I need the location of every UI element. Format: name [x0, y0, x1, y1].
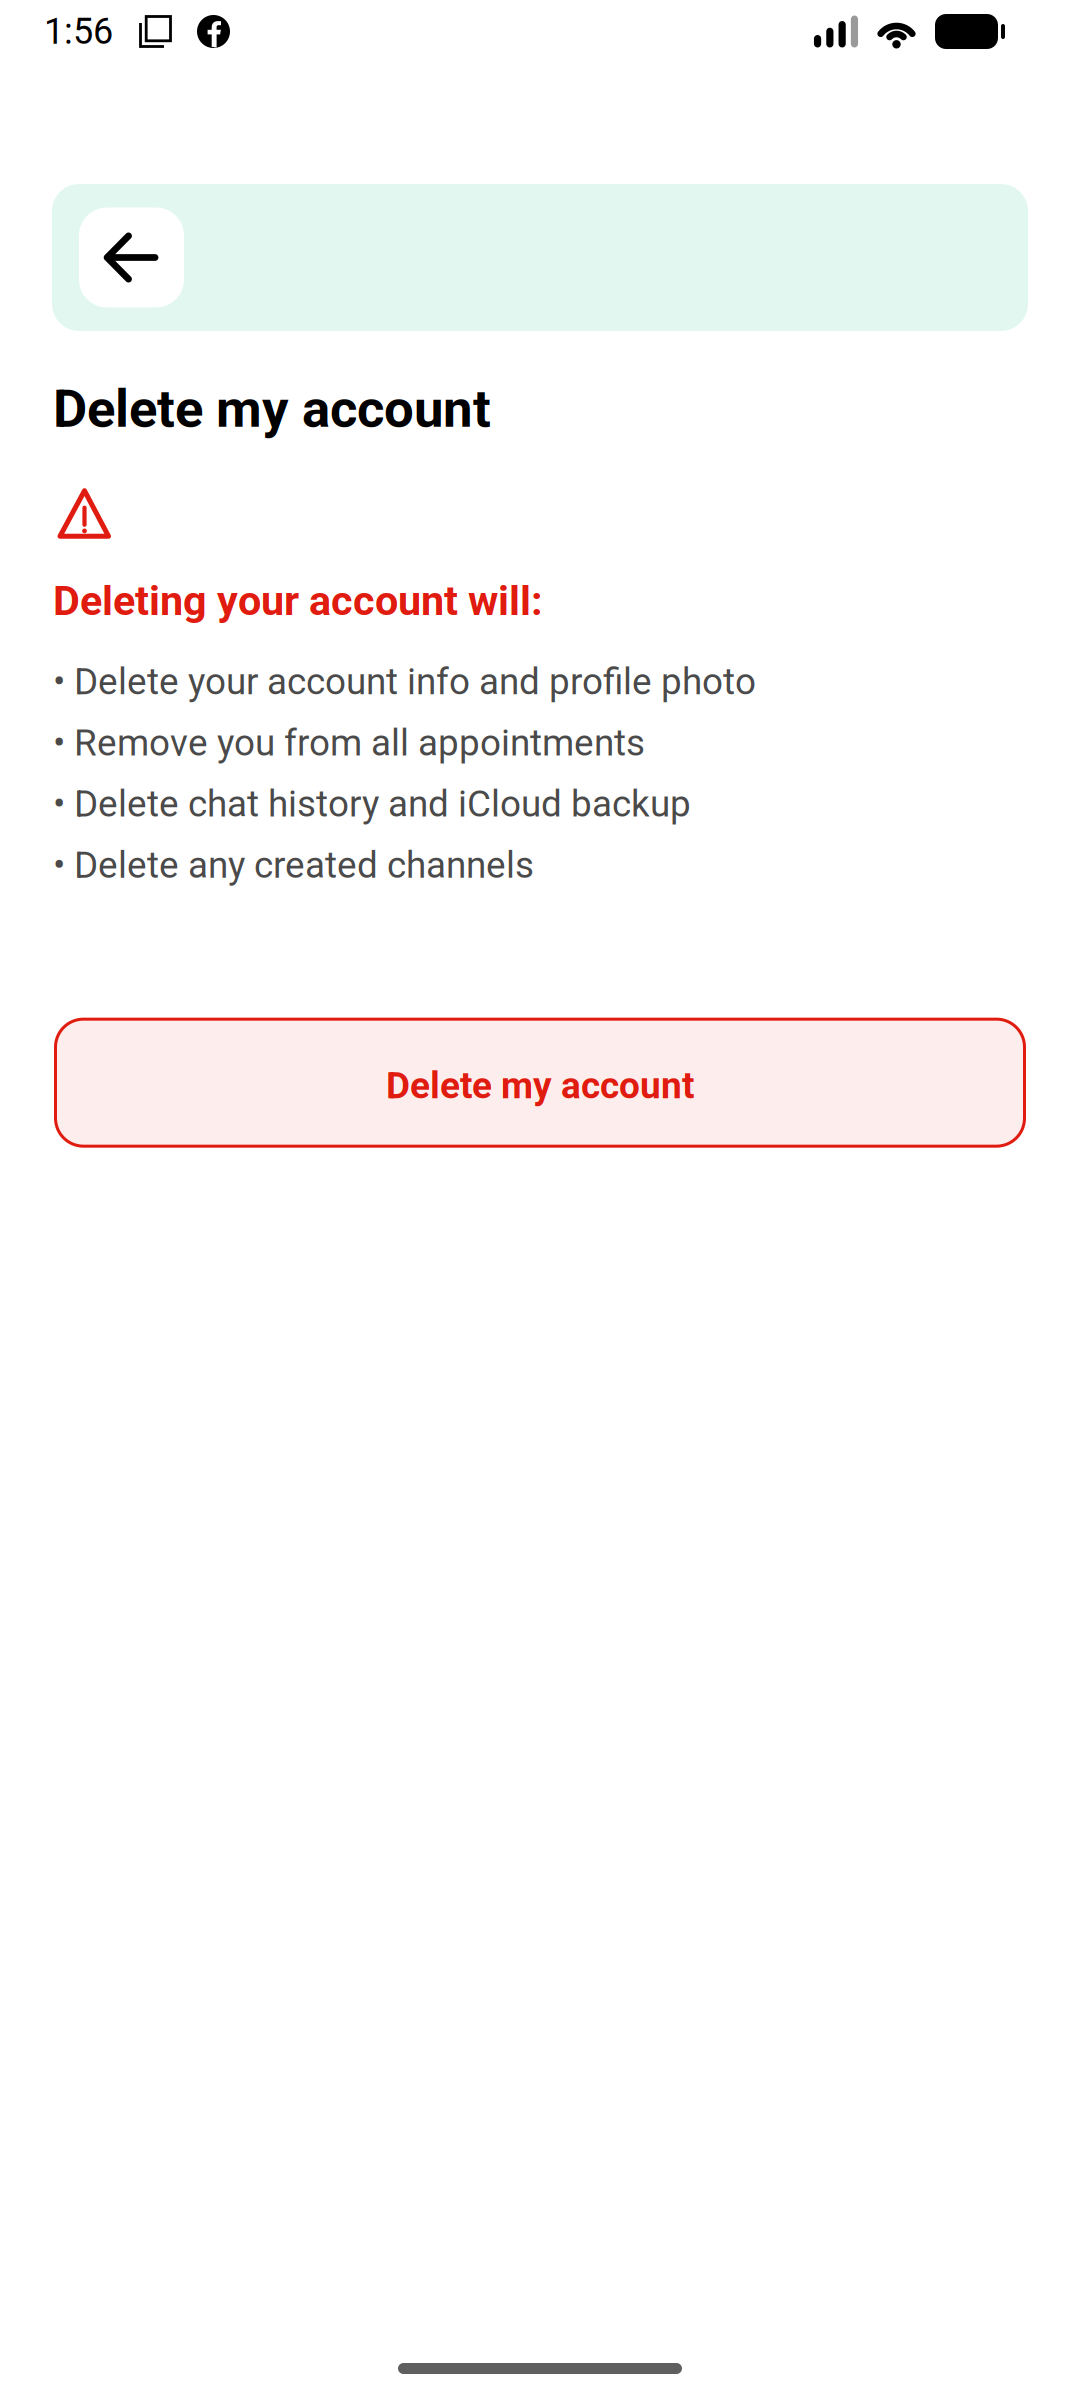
staticText: Delete my account: [53, 378, 491, 440]
staticText: Delete my account: [386, 1064, 694, 1107]
staticText: • Delete any created channels: [53, 843, 534, 887]
staticText: • Delete chat history and iCloud backup: [53, 782, 691, 825]
staticText: • Remove you from all appointments: [53, 721, 645, 764]
staticText: • Delete your account info and profile p…: [53, 660, 756, 703]
button[interactable]: Delete my account: [54, 1018, 1026, 1148]
staticText: 1:56: [44, 10, 113, 53]
staticText: Deleting your account will:: [53, 577, 543, 625]
button[interactable]: Back: [79, 207, 184, 307]
